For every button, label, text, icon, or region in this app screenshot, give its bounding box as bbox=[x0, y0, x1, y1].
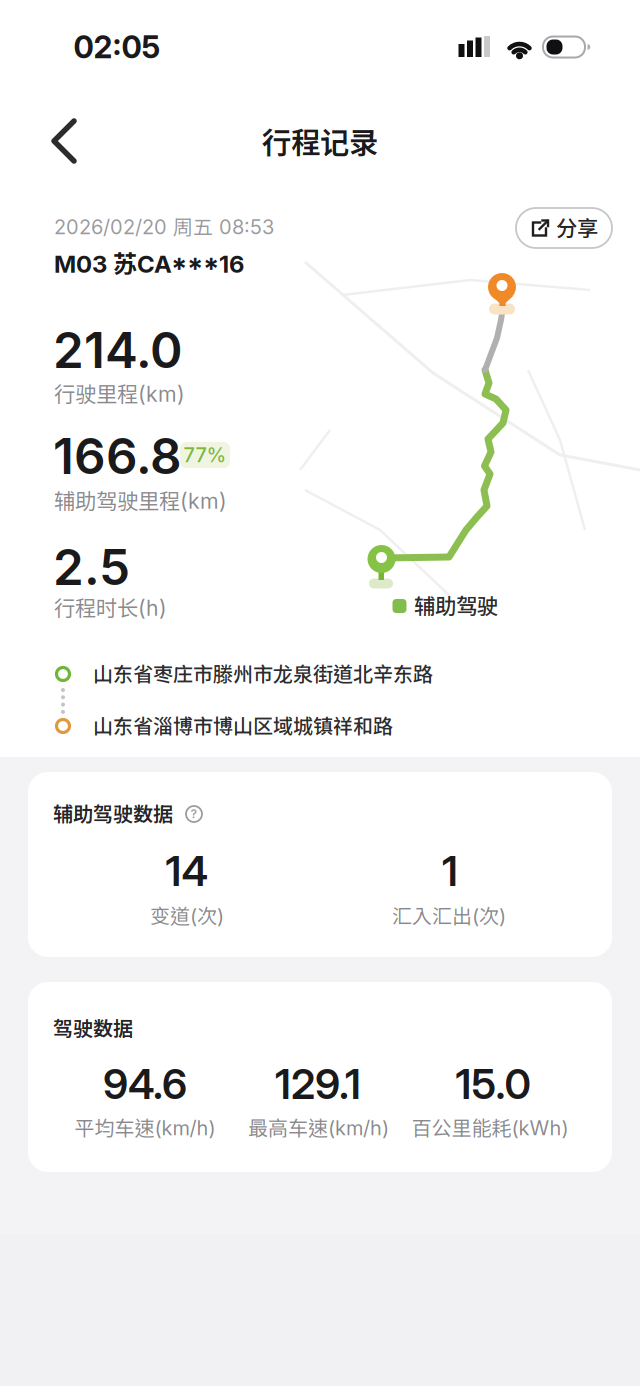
staticText: ? bbox=[190, 807, 197, 821]
button[interactable]: 分享 bbox=[516, 208, 612, 248]
staticText: 214.0 bbox=[53, 321, 183, 379]
staticText: 辅助驾驶数据 bbox=[53, 802, 173, 825]
staticText: 最高车速(km/h) bbox=[248, 1116, 389, 1140]
staticText: 77% bbox=[183, 443, 226, 467]
staticText: 1 bbox=[442, 847, 458, 895]
staticText: 分享 bbox=[556, 216, 598, 240]
staticText: 14 bbox=[165, 847, 208, 895]
staticText: 汇入汇出(次) bbox=[392, 904, 506, 928]
staticText: 2.5 bbox=[53, 538, 130, 596]
button[interactable]: 辅助驾驶数据说明 bbox=[182, 802, 206, 826]
staticText: 驾驶数据 bbox=[53, 1017, 133, 1040]
staticText: 辅助驾驶 bbox=[414, 594, 498, 618]
staticText: 平均车速(km/h) bbox=[74, 1116, 215, 1140]
staticText: 2026/02/20 周五 08:53 bbox=[54, 215, 274, 239]
staticText: 02:05 bbox=[73, 29, 160, 65]
staticText: 山东省枣庄市滕州市龙泉街道北辛东路 bbox=[93, 662, 433, 685]
staticText: M03 苏CA***16 bbox=[54, 250, 244, 278]
staticText: 行程时长(h) bbox=[54, 595, 167, 621]
button[interactable]: Back bbox=[42, 113, 94, 169]
staticText: 行程记录 bbox=[262, 125, 378, 159]
staticText: 百公里能耗(kWh) bbox=[411, 1116, 568, 1140]
staticText: 山东省淄博市博山区域城镇祥和路 bbox=[93, 714, 393, 737]
staticText: 辅助驾驶里程(km) bbox=[54, 488, 227, 514]
staticText: 94.6 bbox=[103, 1060, 187, 1108]
staticText: 行驶里程(km) bbox=[54, 381, 185, 407]
staticText: 129.1 bbox=[275, 1060, 361, 1108]
staticText: 变道(次) bbox=[150, 904, 224, 928]
staticText: 15.0 bbox=[455, 1060, 530, 1108]
staticText: 166.8 bbox=[53, 427, 182, 485]
